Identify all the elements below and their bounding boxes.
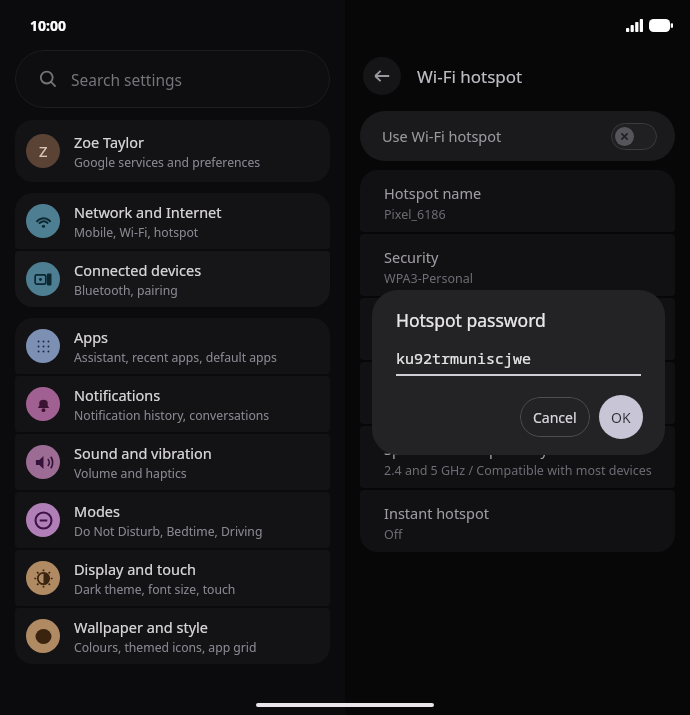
staticText: Hotspot name [384, 183, 482, 203]
staticText: Off [384, 526, 403, 543]
staticText: Connected devices [74, 260, 202, 280]
staticText: WPA3-Personal [384, 270, 474, 287]
staticText: Notification history, conversations [74, 407, 270, 424]
button[interactable]: Security [360, 234, 675, 296]
button[interactable]: OK [599, 395, 643, 439]
staticText: Sound and vibration [74, 443, 212, 463]
staticText: Assistant, recent apps, default apps [74, 349, 277, 366]
staticText: Display and touch [74, 559, 196, 579]
staticText: Hotspot password [384, 311, 509, 331]
staticText: Zoe Taylor [74, 132, 144, 152]
staticText: Hotspot password [396, 308, 546, 332]
button[interactable]: Hotspot name [360, 170, 675, 232]
button[interactable]: Use Wi-Fi hotspot toggle [611, 123, 657, 150]
staticText: Security [384, 247, 439, 267]
staticText: 2.4 and 5 GHz / Compatible with most dev… [384, 462, 652, 479]
button[interactable]: Use Wi-Fi hotspot [360, 111, 675, 161]
button[interactable]: Instant hotspot [360, 490, 675, 552]
staticText: Volume and haptics [74, 465, 187, 482]
staticText: Cancel [533, 408, 577, 427]
staticText: Bluetooth, pairing [74, 282, 178, 299]
staticText: Apps [74, 327, 109, 347]
button[interactable]: Cancel [520, 397, 590, 437]
staticText: Pixel_6186 [384, 206, 446, 223]
button[interactable]: Speed and compatibility [360, 426, 675, 488]
button[interactable]: Notifications [15, 376, 330, 432]
button[interactable]: Sound and vibration [15, 434, 330, 490]
staticText: OK [611, 408, 631, 427]
staticText: ku92trmuniscjwe [396, 348, 532, 368]
button[interactable]: Hotspot password [360, 298, 675, 360]
button[interactable]: AP Band [360, 362, 675, 424]
staticText: Wi-Fi hotspot [417, 65, 523, 88]
staticText: Instant hotspot [384, 503, 489, 523]
button[interactable]: Network and Internet [15, 193, 330, 249]
staticText: Google services and preferences [74, 154, 261, 171]
button[interactable]: Apps [15, 318, 330, 374]
staticText: Colours, themed icons, app grid [74, 639, 257, 656]
staticText: Mobile, Wi-Fi, hotspot [74, 224, 199, 241]
staticText: AP Band [384, 375, 442, 395]
staticText: Notifications [74, 385, 161, 405]
staticText: Search settings [71, 69, 182, 90]
button[interactable]: Connected devices [15, 251, 330, 307]
staticText: Network and Internet [74, 202, 222, 222]
button[interactable]: Back [363, 57, 401, 95]
button[interactable]: Wallpaper and style [15, 608, 330, 664]
staticText: Z [39, 141, 48, 161]
staticText: Do Not Disturb, Bedtime, Driving [74, 523, 263, 540]
button[interactable]: Search settings [15, 50, 330, 108]
button[interactable]: Z [15, 120, 330, 182]
staticText: Wallpaper and style [74, 617, 208, 637]
button[interactable]: Modes [15, 492, 330, 548]
staticText: Use Wi-Fi hotspot [382, 126, 502, 146]
staticText: Speed and compatibility [384, 439, 548, 459]
staticText: 10:00 [30, 16, 66, 35]
staticText: Dark theme, font size, touch [74, 581, 236, 598]
button[interactable]: Display and touch [15, 550, 330, 606]
staticText: Modes [74, 501, 120, 521]
